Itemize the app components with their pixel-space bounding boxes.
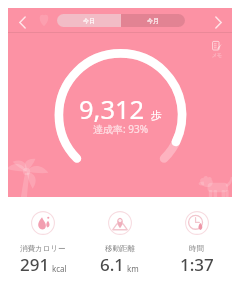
button[interactable]: 次へ — [208, 12, 228, 32]
staticText: 1:37 — [180, 253, 214, 276]
staticText: 時間 — [189, 244, 204, 253]
button[interactable]: 前へ — [12, 12, 32, 32]
staticText: 消費カロリー — [20, 244, 66, 253]
button[interactable]: メモ — [204, 41, 230, 58]
staticText: 移動距離 — [105, 244, 135, 253]
staticText: 291 — [20, 253, 50, 276]
staticText: 今月 — [147, 17, 159, 25]
button[interactable]: 消費カロリー — [5, 211, 81, 276]
button[interactable]: 今月 — [121, 14, 185, 27]
staticText: メモ — [212, 52, 223, 58]
staticText: km — [127, 263, 139, 274]
button[interactable]: 時間 — [158, 211, 235, 276]
staticText: 歩 — [151, 108, 162, 122]
staticText: 9,312 — [79, 92, 145, 127]
staticText: 今日 — [83, 17, 95, 25]
staticText: 6.1 — [100, 253, 125, 276]
button[interactable]: 今日 — [57, 14, 121, 27]
staticText: kcal — [52, 263, 67, 274]
staticText: 達成率: 93% — [93, 122, 149, 136]
button[interactable]: 移動距離 — [81, 211, 158, 276]
